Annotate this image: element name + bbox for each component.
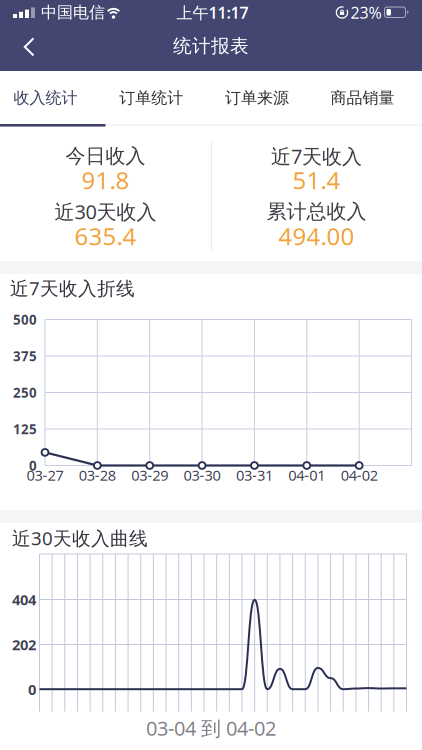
staticText: 统计报表 xyxy=(173,34,249,57)
button[interactable]: 商品销量 xyxy=(310,71,415,124)
staticText: 近30天收入 xyxy=(54,198,156,225)
staticText: 订单统计 xyxy=(119,88,183,108)
button[interactable]: 订单来源 xyxy=(204,71,309,124)
staticText: 上午11:17 xyxy=(176,2,248,23)
staticText: 今日收入 xyxy=(65,144,145,168)
staticText: 03-27 xyxy=(26,465,63,485)
staticText: 404 xyxy=(12,590,36,609)
staticText: 23% xyxy=(350,2,381,23)
staticText: 375 xyxy=(13,347,37,365)
staticText: 202 xyxy=(12,635,36,654)
staticText: 0 xyxy=(29,457,37,474)
staticText: 03-28 xyxy=(79,465,116,485)
staticText: 近30天收入曲线 xyxy=(12,526,148,550)
staticText: 03-30 xyxy=(184,465,221,485)
staticText: 中国电信 xyxy=(41,3,105,22)
staticText: 91.8 xyxy=(81,164,129,196)
staticText: 03-04 到 04-02 xyxy=(146,715,276,741)
staticText: 04-01 xyxy=(288,465,325,485)
staticText: 03-31 xyxy=(236,465,273,485)
staticText: 250 xyxy=(13,384,37,401)
button[interactable]: 收入统计 xyxy=(0,71,98,124)
staticText: 近7天收入 xyxy=(271,143,362,169)
staticText: 近7天收入折线 xyxy=(10,276,135,300)
staticText: 商品销量 xyxy=(330,88,394,108)
staticText: 500 xyxy=(13,311,37,328)
staticText: 累计总收入 xyxy=(266,199,366,224)
staticText: 635.4 xyxy=(74,220,136,252)
staticText: 494.00 xyxy=(278,220,354,252)
staticText: 收入统计 xyxy=(13,88,77,108)
button[interactable]: Back xyxy=(5,33,49,60)
button[interactable]: 订单统计 xyxy=(99,71,204,124)
staticText: 订单来源 xyxy=(225,88,289,108)
staticText: 04-02 xyxy=(341,465,378,485)
staticText: 03-29 xyxy=(131,465,168,485)
staticText: 51.4 xyxy=(292,164,340,196)
staticText: 125 xyxy=(13,420,37,438)
staticText: 0 xyxy=(28,679,36,699)
